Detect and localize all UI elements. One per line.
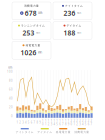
staticText: 3 (22, 121, 24, 124)
button[interactable]: 発電電力量 (12, 41, 51, 59)
staticText: 9 (39, 121, 41, 124)
button[interactable]: 消費電力量 (74, 128, 89, 134)
staticText: 消費電力量 (74, 130, 89, 134)
staticText: 60 (9, 88, 13, 91)
staticText: 188 (63, 28, 75, 37)
staticText: 19 (68, 119, 70, 126)
staticText: 23 (79, 119, 81, 126)
staticText: 0 (11, 114, 13, 118)
staticText: 18 (65, 119, 67, 126)
staticText: min (77, 11, 82, 15)
button[interactable]: ランニングタイム (12, 22, 51, 39)
staticText: ランニングタイム (21, 24, 45, 27)
staticText: 100 (7, 70, 13, 73)
staticText: kWh (38, 51, 43, 54)
staticText: デイタイム (66, 24, 81, 27)
staticText: 27 (91, 119, 93, 126)
button[interactable]: ナイトタイム (16, 128, 34, 134)
staticText: 21 (73, 119, 75, 126)
staticText: 12 (48, 119, 50, 126)
staticText: 7 (33, 121, 35, 124)
staticText: ナイトタイム (65, 4, 83, 7)
staticText: 14 (53, 119, 55, 126)
staticText: 10 (42, 119, 44, 126)
staticText: 2 (19, 121, 21, 124)
button[interactable]: 発電電力量 (56, 128, 71, 134)
staticText: 26 (88, 119, 90, 126)
staticText: 16 (59, 119, 61, 126)
staticText: min (77, 31, 82, 35)
button[interactable]: 消費電力量 (12, 2, 51, 20)
staticText: 8 (36, 121, 38, 124)
staticText: 22 (76, 119, 78, 126)
staticText: min (36, 31, 41, 35)
staticText: 17 (62, 119, 64, 126)
staticText: 24 (82, 119, 84, 126)
staticText: 発電電力量 (56, 130, 71, 134)
staticText: 消費電力量 (24, 4, 39, 7)
button[interactable]: デイタイム (53, 22, 92, 39)
staticText: 253 (22, 28, 34, 37)
staticText: kWh (38, 11, 43, 15)
staticText: 678 (25, 9, 37, 18)
staticText: 13 (51, 119, 53, 126)
button[interactable]: ナイトタイム (53, 2, 92, 20)
staticText: 1026 (20, 48, 36, 57)
staticText: 11 (45, 119, 47, 126)
staticText: 6 (31, 121, 33, 124)
staticText: 80 (9, 79, 13, 82)
staticText: 15 (56, 119, 58, 126)
staticText: 20 (71, 119, 73, 126)
staticText: ナイトタイム (16, 130, 34, 134)
staticText: 4 (25, 121, 27, 124)
staticText: 40 (9, 97, 13, 100)
staticText: 236 (63, 9, 75, 18)
staticText: 20 (9, 106, 13, 109)
staticText: kWh (8, 66, 13, 69)
button[interactable]: デイタイム (37, 128, 52, 134)
staticText: 25 (85, 119, 87, 126)
staticText: 発電電力量 (25, 44, 40, 47)
staticText: デイタイム (37, 130, 52, 134)
staticText: 5 (28, 121, 30, 124)
staticText: 1 (16, 121, 18, 124)
